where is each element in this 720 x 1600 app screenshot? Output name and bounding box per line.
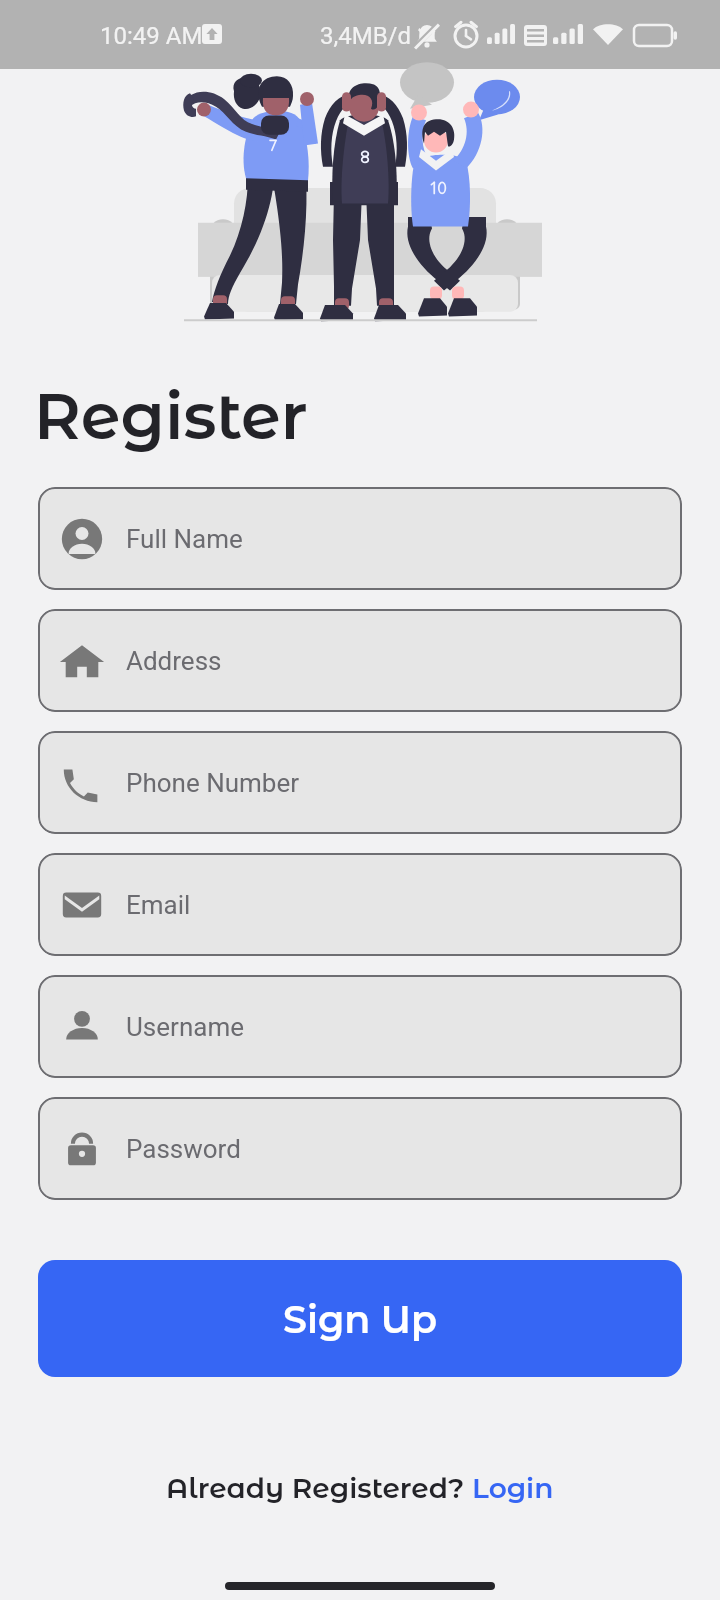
- staticText: Username: [126, 1012, 244, 1042]
- button[interactable]: Login: [472, 1471, 554, 1505]
- button[interactable]: Password: [38, 1097, 682, 1200]
- button[interactable]: Username: [38, 975, 682, 1078]
- button[interactable]: Address: [38, 609, 682, 712]
- staticText: Already Registered?: [166, 1471, 472, 1505]
- button[interactable]: Phone Number: [38, 731, 682, 834]
- staticText: 10:49 AM: [100, 22, 203, 50]
- button[interactable]: Email: [38, 853, 682, 956]
- staticText: Login: [472, 1471, 554, 1505]
- staticText: Password: [126, 1134, 241, 1164]
- staticText: Sign Up: [283, 1296, 437, 1342]
- button[interactable]: Sign Up: [38, 1260, 682, 1377]
- staticText: Full Name: [126, 524, 243, 554]
- staticText: Email: [126, 890, 191, 920]
- staticText: Address: [126, 646, 222, 676]
- staticText: Register: [34, 377, 308, 455]
- button[interactable]: Full Name: [38, 487, 682, 590]
- staticText: 3,4MB/d: [320, 22, 412, 50]
- staticText: Phone Number: [126, 768, 300, 798]
